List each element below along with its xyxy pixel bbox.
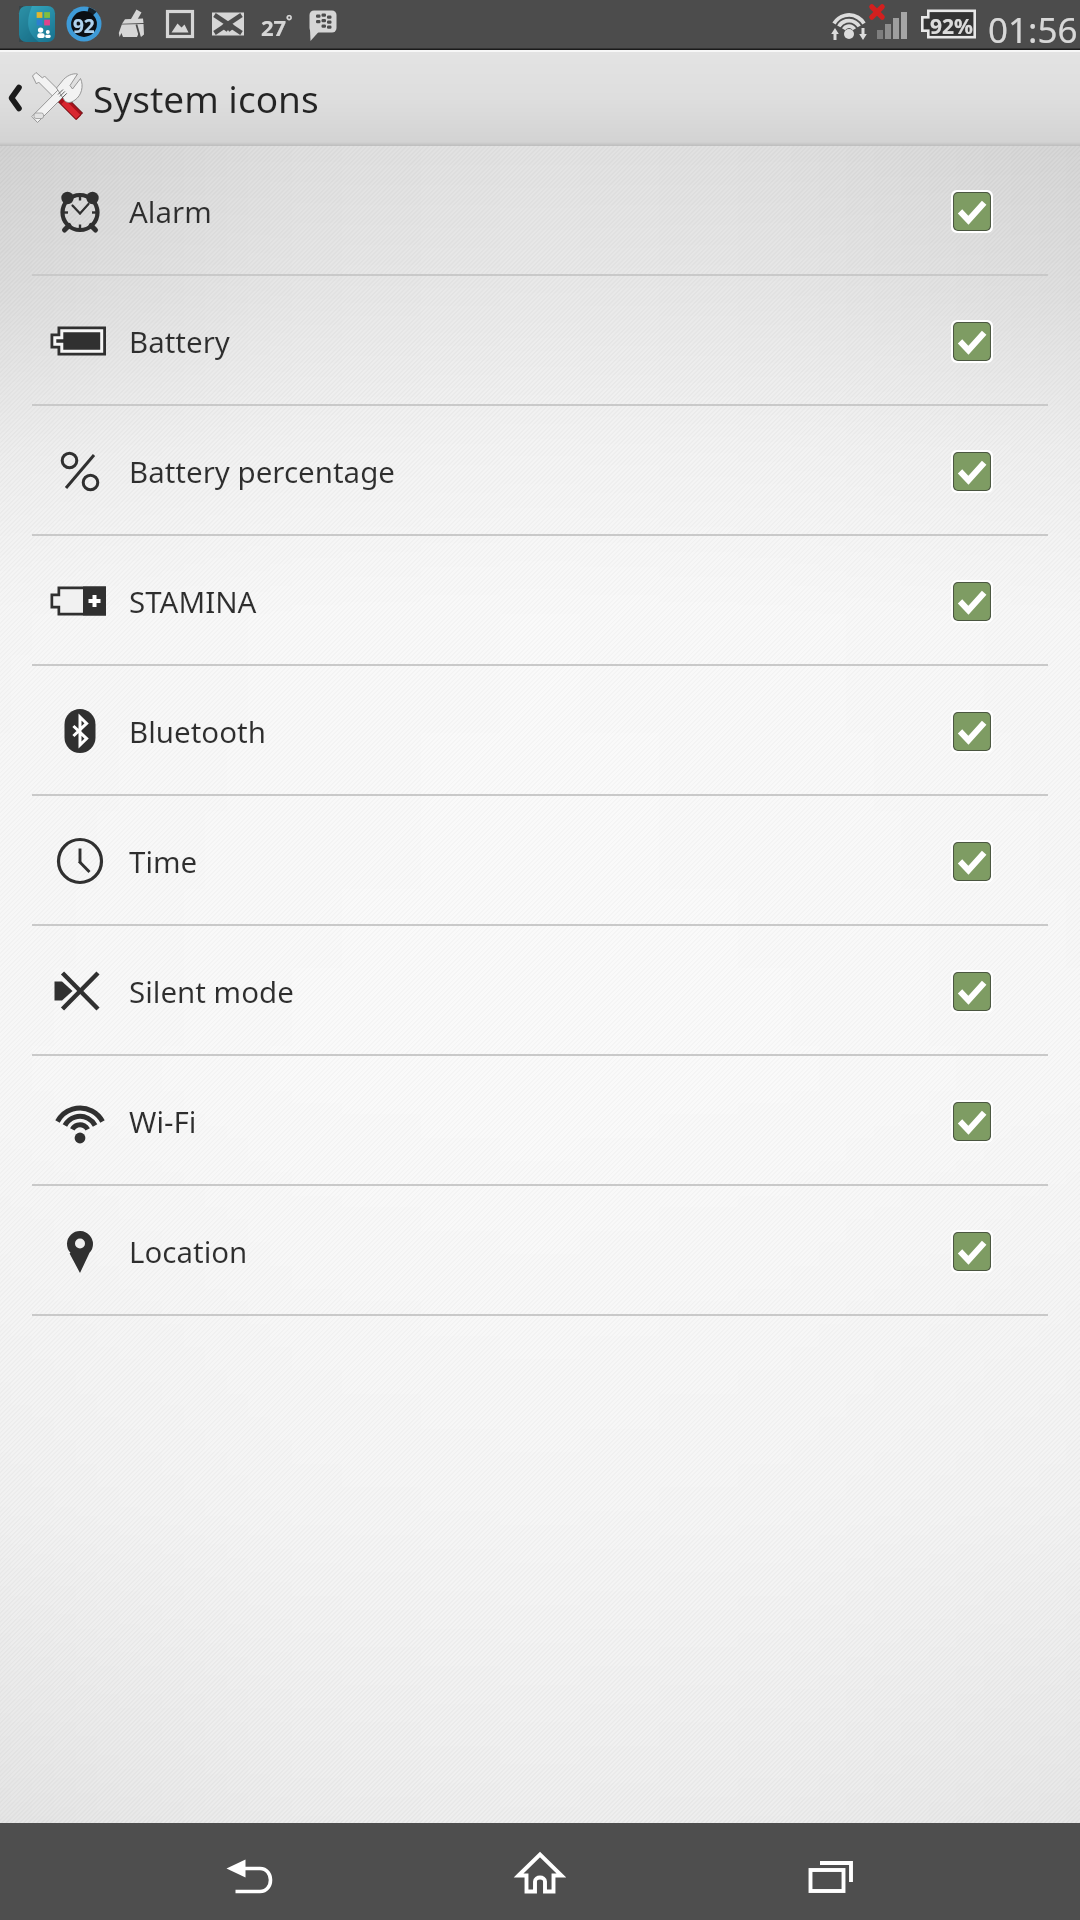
staticText: Alarm [129,191,212,231]
button[interactable]: Bluetooth [0,666,1080,796]
staticText: 92% [930,12,973,41]
staticText: Time [129,841,198,881]
staticText: Location [129,1231,248,1271]
button[interactable]: Alarm [0,146,1080,276]
button[interactable]: Home [395,1823,685,1920]
button[interactable]: Silent mode [0,926,1080,1056]
staticText: Bluetooth [129,711,266,751]
staticText: 92 [73,13,95,39]
staticText: Battery percentage [129,451,395,491]
staticText: 01:56 [988,6,1078,54]
staticText: Silent mode [129,971,294,1011]
staticText: Wi-Fi [129,1101,197,1141]
button[interactable]: Location [0,1186,1080,1316]
staticText: 27 [261,12,287,42]
button[interactable]: Time [0,796,1080,926]
staticText: ° [286,10,293,30]
button[interactable]: Recent apps [685,1823,975,1920]
button[interactable]: Back [105,1823,395,1920]
staticText: STAMINA [129,581,257,621]
button[interactable]: Battery percentage [0,406,1080,536]
button[interactable]: Wi-Fi [0,1056,1080,1186]
staticText: System icons [93,73,319,123]
button[interactable]: STAMINA [0,536,1080,666]
button[interactable]: Back to Settings [0,50,1080,146]
staticText: Battery [129,321,230,361]
button[interactable]: Battery [0,276,1080,406]
